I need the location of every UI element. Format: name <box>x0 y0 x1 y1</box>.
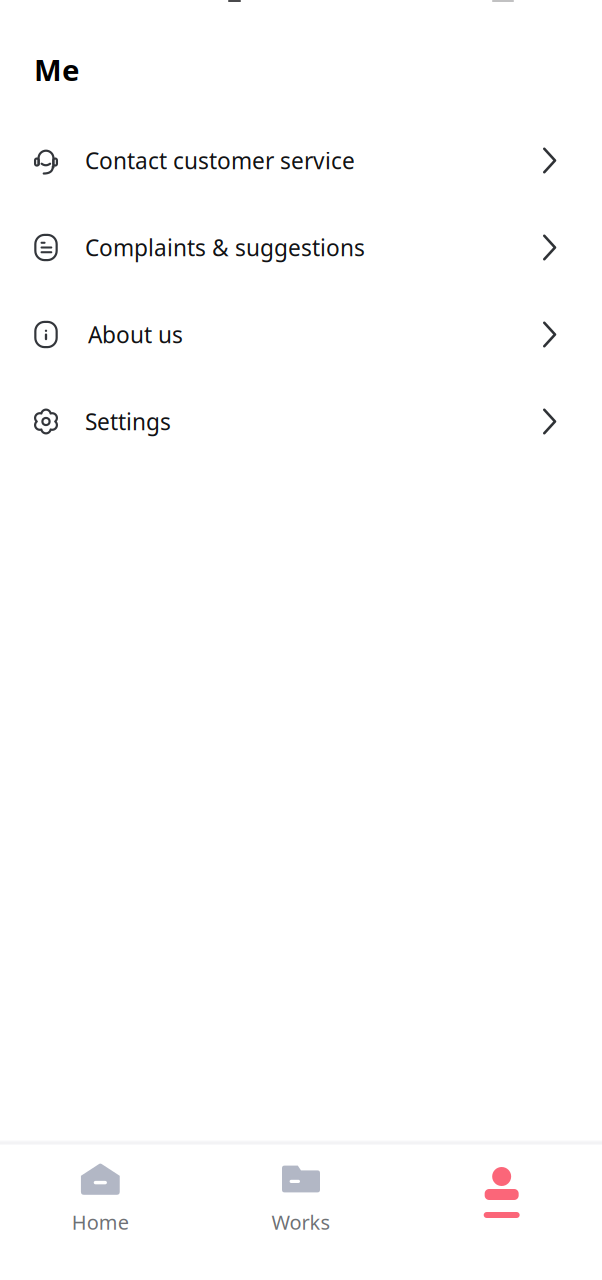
staticText: Me <box>34 50 80 89</box>
button[interactable]: Contact customer service <box>0 117 602 204</box>
button[interactable]: Me <box>401 1146 602 1280</box>
staticText: Complaints & suggestions <box>85 232 365 262</box>
staticText: Home <box>72 1209 129 1235</box>
staticText: Works <box>271 1209 330 1235</box>
button[interactable]: Works <box>201 1146 401 1280</box>
button[interactable]: Home <box>0 1146 201 1280</box>
button[interactable]: About us <box>0 291 602 378</box>
button[interactable]: Settings <box>0 378 602 465</box>
staticText: Settings <box>85 406 171 436</box>
button[interactable]: Complaints & suggestions <box>0 204 602 291</box>
staticText: About us <box>88 319 183 349</box>
staticText: Contact customer service <box>85 145 355 175</box>
